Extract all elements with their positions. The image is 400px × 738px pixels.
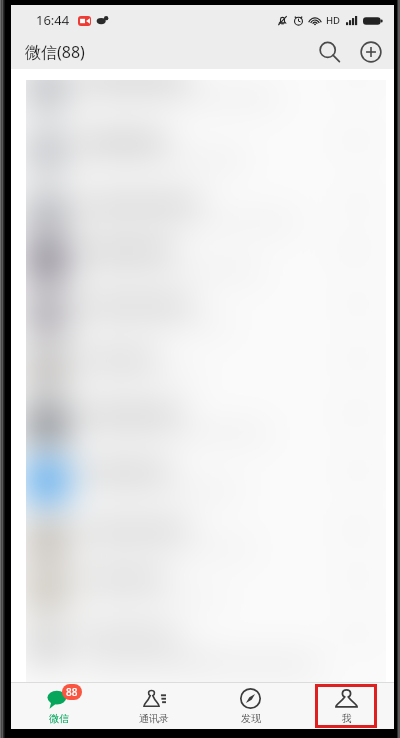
- button[interactable]: Add: [358, 39, 384, 65]
- button[interactable]: 我: [298, 683, 394, 729]
- button[interactable]: 通讯录: [106, 683, 202, 729]
- button[interactable]: Search: [316, 39, 342, 65]
- button[interactable]: 发现: [202, 683, 298, 729]
- staticText: 发现: [241, 712, 261, 725]
- staticText: 通讯录: [139, 712, 169, 725]
- staticText: HD: [326, 14, 341, 27]
- button[interactable]: 88: [11, 683, 106, 729]
- staticText: 16:44: [36, 11, 70, 29]
- staticText: 我: [342, 712, 352, 725]
- staticText: 88: [66, 685, 78, 699]
- staticText: 微信(88): [25, 41, 85, 63]
- staticText: 微信: [49, 712, 69, 725]
